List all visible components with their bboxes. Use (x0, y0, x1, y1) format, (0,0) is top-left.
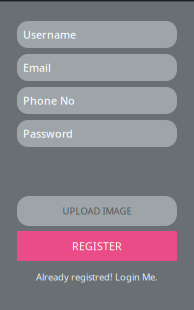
button[interactable]: Phone No (17, 87, 177, 114)
button[interactable]: REGISTER (17, 231, 177, 261)
staticText: Phone No (23, 93, 75, 108)
staticText: Email (23, 60, 51, 75)
staticText: Password (23, 126, 73, 141)
button[interactable]: UPLOAD IMAGE (17, 196, 177, 226)
staticText: UPLOAD IMAGE (62, 205, 131, 217)
button[interactable]: Already registred! Login Me. (17, 270, 177, 284)
staticText: REGISTER (72, 239, 122, 253)
staticText: Already registred! Login Me. (36, 271, 158, 283)
button[interactable]: Username (17, 21, 177, 48)
button[interactable]: Email (17, 54, 177, 81)
button[interactable]: Password (17, 120, 177, 147)
staticText: Username (23, 27, 76, 42)
